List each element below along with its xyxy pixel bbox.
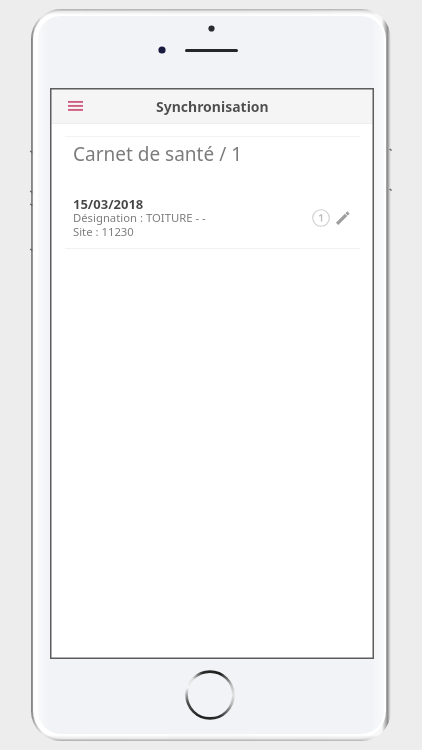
- staticText: 15/03/2018: [73, 195, 144, 213]
- button[interactable]: 15/03/2018: [50, 191, 374, 249]
- button[interactable]: Details: [307, 204, 335, 232]
- staticText: Désignation : TOITURE - -: [73, 210, 206, 225]
- button[interactable]: Edit: [328, 204, 356, 232]
- staticText: Synchronisation: [156, 97, 269, 116]
- staticText: Carnet de santé / 1: [73, 141, 243, 167]
- button[interactable]: Open navigation menu: [54, 89, 96, 123]
- staticText: Site : 11230: [73, 224, 134, 239]
